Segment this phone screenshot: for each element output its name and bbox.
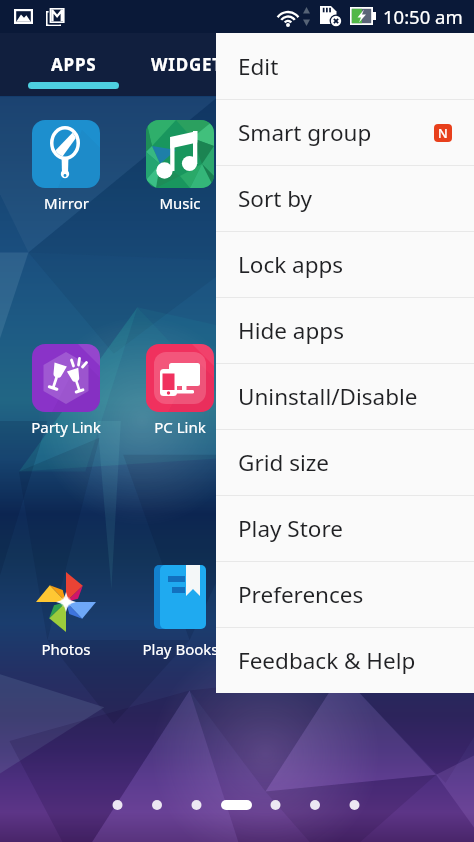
staticText: Music: [159, 193, 201, 213]
staticText: Grid size: [238, 447, 330, 478]
staticText: Play Store: [238, 513, 343, 544]
button[interactable]: Photos: [1, 566, 131, 659]
button[interactable]: Mirror: [1, 120, 131, 213]
button[interactable]: Lock apps: [216, 232, 474, 297]
staticText: Sort by: [238, 183, 313, 214]
staticText: Preferences: [238, 579, 364, 610]
staticText: Hide apps: [238, 315, 344, 346]
button[interactable]: Party Link: [1, 344, 131, 437]
staticText: Feedback & Help: [238, 645, 416, 676]
button[interactable]: PC Link: [115, 344, 245, 437]
button[interactable]: Music: [115, 120, 245, 213]
button[interactable]: Play Store: [216, 496, 474, 561]
button[interactable]: Smart group: [216, 100, 474, 165]
staticText: Smart group: [238, 117, 372, 148]
staticText: Uninstall/Disable: [238, 381, 418, 412]
button[interactable]: Sort by: [216, 166, 474, 231]
button[interactable]: APPS: [16, 33, 131, 96]
staticText: Party Link: [31, 417, 101, 437]
staticText: Play Books: [142, 639, 219, 659]
staticText: WIDGETS: [151, 53, 234, 76]
staticText: 10:50 am: [383, 4, 463, 29]
staticText: Lock apps: [238, 249, 344, 280]
staticText: Mirror: [44, 193, 89, 213]
staticText: Photos: [41, 639, 91, 659]
button[interactable]: WIDGETS: [135, 33, 250, 96]
button[interactable]: Preferences: [216, 562, 474, 627]
button[interactable]: Grid size: [216, 430, 474, 495]
button[interactable]: Play Books: [115, 566, 245, 659]
button[interactable]: Uninstall/Disable: [216, 364, 474, 429]
staticText: N: [438, 125, 448, 142]
staticText: APPS: [51, 53, 97, 76]
staticText: Edit: [238, 51, 279, 82]
staticText: PC Link: [154, 417, 206, 437]
button[interactable]: Hide apps: [216, 298, 474, 363]
button[interactable]: Edit: [216, 33, 474, 99]
button[interactable]: Feedback & Help: [216, 628, 474, 693]
